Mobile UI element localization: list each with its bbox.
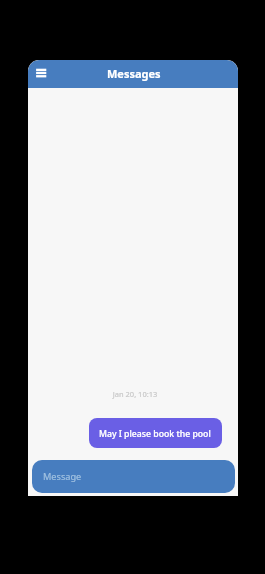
button[interactable]: Message (32, 460, 235, 493)
button[interactable]: May I please book the pool (89, 418, 222, 448)
staticText: Message (43, 470, 82, 483)
staticText: Messages (107, 66, 161, 81)
button[interactable]: Open navigation menu (29, 62, 49, 86)
staticText: May I please book the pool (99, 428, 211, 440)
staticText: Jan 20, 10:13 (30, 389, 238, 399)
